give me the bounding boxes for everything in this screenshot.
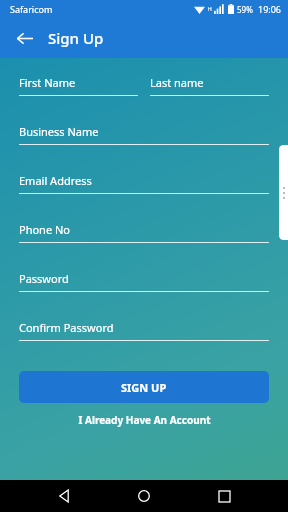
- staticText: Password: [19, 271, 69, 286]
- button[interactable]: First Name: [19, 75, 138, 96]
- staticText: First Name: [19, 75, 76, 90]
- button[interactable]: Last name: [150, 75, 269, 96]
- button[interactable]: Password: [19, 271, 269, 292]
- staticText: H: [208, 6, 212, 13]
- button[interactable]: Back: [48, 480, 80, 512]
- staticText: I Already Have An Account: [78, 413, 211, 427]
- staticText: 19:06: [258, 3, 282, 15]
- staticText: Last name: [150, 75, 204, 90]
- staticText: Email Address: [19, 173, 92, 188]
- button[interactable]: Business Name: [19, 124, 269, 145]
- button[interactable]: Back: [8, 22, 40, 54]
- staticText: 59%: [237, 4, 253, 15]
- staticText: Sign Up: [48, 28, 104, 48]
- staticText: Safaricom: [10, 3, 53, 15]
- button[interactable]: Recent apps: [208, 480, 240, 512]
- staticText: Business Name: [19, 124, 99, 139]
- button[interactable]: I Already Have An Account: [19, 413, 269, 427]
- staticText: Phone No: [19, 222, 70, 237]
- button[interactable]: SIGN UP: [19, 371, 269, 403]
- button[interactable]: Confirm Password: [19, 320, 269, 341]
- button[interactable]: Email Address: [19, 173, 269, 194]
- staticText: SIGN UP: [121, 380, 167, 395]
- staticText: Confirm Password: [19, 320, 114, 335]
- button[interactable]: Home: [128, 480, 160, 512]
- button[interactable]: Phone No: [19, 222, 269, 243]
